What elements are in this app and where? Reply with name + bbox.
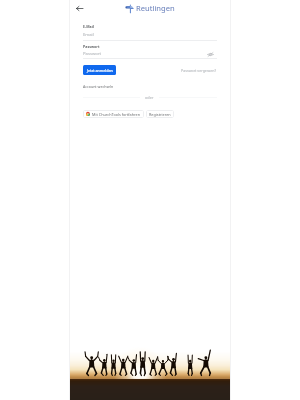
button[interactable]: Show password	[206, 50, 214, 58]
staticText: Jetzt anmelden	[87, 68, 113, 73]
staticText: Passwort	[83, 44, 100, 49]
staticText: oder	[145, 95, 154, 100]
staticText: Passwort	[83, 51, 206, 57]
staticText: E-Mail	[83, 24, 94, 29]
staticText: Reutlingen	[136, 3, 175, 13]
button[interactable]: Mit ChurchTools fortfahren	[83, 110, 144, 118]
staticText: Passwort vergessen?	[181, 68, 217, 73]
staticText: Account wechseln	[83, 84, 114, 89]
staticText: Registrieren	[149, 112, 171, 117]
staticText: Mit ChurchTools fortfahren	[92, 112, 141, 117]
button[interactable]: Passwort vergessen?	[181, 68, 217, 73]
button[interactable]: Account wechseln	[83, 84, 114, 89]
button[interactable]: Jetzt anmelden	[83, 65, 116, 75]
staticText: Email	[83, 32, 94, 38]
button[interactable]: Back	[73, 2, 86, 15]
button[interactable]: Registrieren	[146, 110, 174, 118]
